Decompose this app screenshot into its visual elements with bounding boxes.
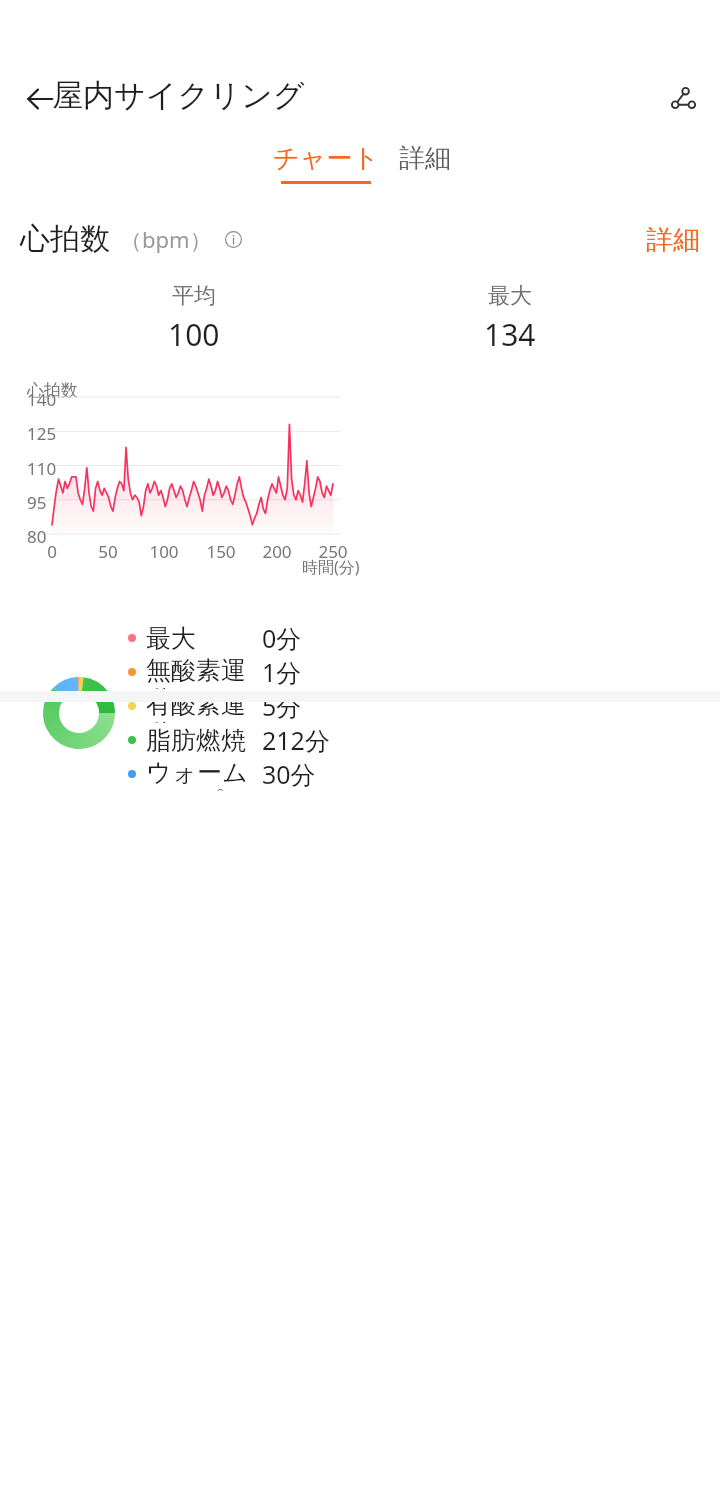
staticText: 詳細 (399, 142, 451, 175)
staticText: 脂肪燃焼 (146, 725, 246, 756)
button[interactable]: チャート (269, 142, 383, 184)
button[interactable]: ウォームアップ (128, 757, 720, 791)
button[interactable]: 情報 (218, 224, 248, 254)
staticText: 50 (98, 540, 118, 563)
button[interactable]: 有酸素運動 (128, 689, 720, 723)
staticText: 0分 (262, 621, 302, 655)
staticText: 詳細 (646, 223, 700, 257)
button[interactable]: 詳細 (640, 220, 706, 260)
staticText: ウォームアップ (146, 757, 254, 791)
staticText: 有酸素運動 (146, 689, 254, 723)
staticText: 212分 (262, 723, 330, 757)
staticText: （bpm） (120, 224, 212, 254)
staticText: 200 (262, 540, 292, 563)
staticText: 30分 (262, 757, 316, 791)
staticText: 134 (484, 314, 536, 355)
staticText: 心拍数 (20, 220, 110, 258)
staticText: 無酸素運動 (146, 655, 254, 689)
staticText: 140 (27, 388, 57, 411)
staticText: 250 (318, 540, 348, 563)
staticText: 5分 (262, 689, 302, 723)
staticText: 125 (27, 422, 57, 445)
button[interactable]: 詳細 (397, 142, 453, 175)
staticText: 0 (47, 540, 57, 563)
staticText: 100 (168, 314, 220, 355)
staticText: 95 (27, 491, 47, 514)
staticText: 最大 (146, 623, 196, 654)
button[interactable]: 脂肪燃焼 (128, 723, 720, 757)
staticText: 最大 (488, 282, 532, 310)
staticText: チャート (273, 142, 379, 175)
staticText: 110 (27, 457, 57, 480)
staticText: 100 (149, 540, 179, 563)
button[interactable]: 共有 (660, 78, 706, 120)
staticText: 平均 (172, 282, 216, 310)
staticText: 80 (27, 525, 47, 548)
staticText: 1分 (262, 655, 302, 689)
button[interactable]: 無酸素運動 (128, 655, 720, 689)
staticText: 心拍数 (27, 380, 78, 401)
staticText: 時間(分) (302, 556, 360, 578)
staticText: 150 (206, 540, 236, 563)
button[interactable]: 戻る (18, 78, 62, 120)
staticText: 屋内サイクリング (52, 76, 305, 115)
button[interactable]: 最大 (128, 621, 720, 655)
